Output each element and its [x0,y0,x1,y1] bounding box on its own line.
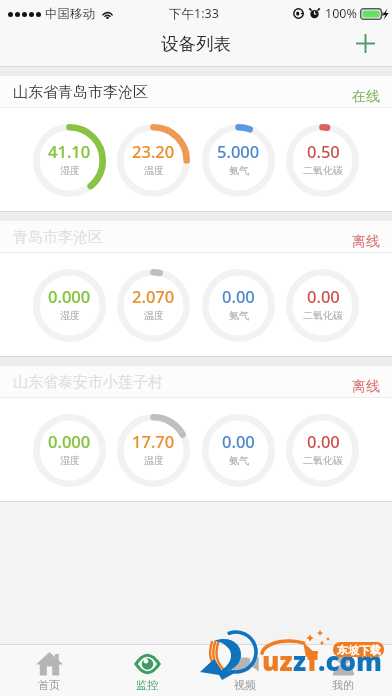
staticText: 41.10 [48,140,91,162]
staticText: uz [262,643,293,678]
staticText: 中国移动 [45,6,95,22]
staticText: 5.000 [217,140,260,162]
staticText: 我的 [332,678,354,692]
staticText: 山东省泰安市小莲子村 [13,373,163,392]
staticText: 山东省青岛市李沧区 [13,83,148,102]
staticText: 氨气 [229,309,249,322]
staticText: 二氧化碳 [303,164,343,177]
staticText: 二氧化碳 [303,454,343,467]
staticText: 0.00 [222,430,255,452]
button[interactable]: 我的 [294,645,392,696]
staticText: 监控 [136,678,158,692]
staticText: 温度 [144,454,164,467]
staticText: 设备列表 [161,33,231,55]
staticText: 湿度 [60,309,80,322]
staticText: f [307,643,318,678]
staticText: 氨气 [229,454,249,467]
staticText: 0.000 [48,430,91,452]
button[interactable]: 首页 [0,645,98,696]
staticText: 青岛市李沧区 [13,228,103,247]
staticText: 0.00 [222,285,255,307]
staticText: 温度 [144,309,164,322]
staticText: 湿度 [60,454,80,467]
button[interactable]: 视频 [196,645,294,696]
staticText: .com [318,643,383,678]
staticText: 首页 [38,678,60,692]
staticText: 2.070 [132,285,175,307]
staticText: 0.50 [307,140,340,162]
button[interactable]: 青岛市李沧区 [0,221,392,357]
button[interactable]: 监控 [98,645,196,696]
staticText: 温度 [144,164,164,177]
staticText: 氨气 [229,164,249,177]
staticText: 东坡下载 [337,643,381,657]
button[interactable]: 山东省青岛市李沧区 [0,76,392,212]
staticText: 0.00 [307,285,340,307]
staticText: 视频 [234,678,256,692]
button[interactable]: Add device [350,28,380,58]
staticText: 23.20 [132,140,175,162]
staticText: 下午1:33 [169,5,219,22]
button[interactable]: 山东省泰安市小莲子村 [0,366,392,502]
staticText: 0.000 [48,285,91,307]
staticText: 湿度 [60,164,80,177]
staticText: z [293,643,307,678]
staticText: 二氧化碳 [303,309,343,322]
staticText: 100% [325,5,357,22]
staticText: 17.70 [132,430,175,452]
staticText: 离线 [352,233,380,251]
staticText: 在线 [352,88,380,106]
staticText: 离线 [352,378,380,396]
staticText: 0.00 [307,430,340,452]
